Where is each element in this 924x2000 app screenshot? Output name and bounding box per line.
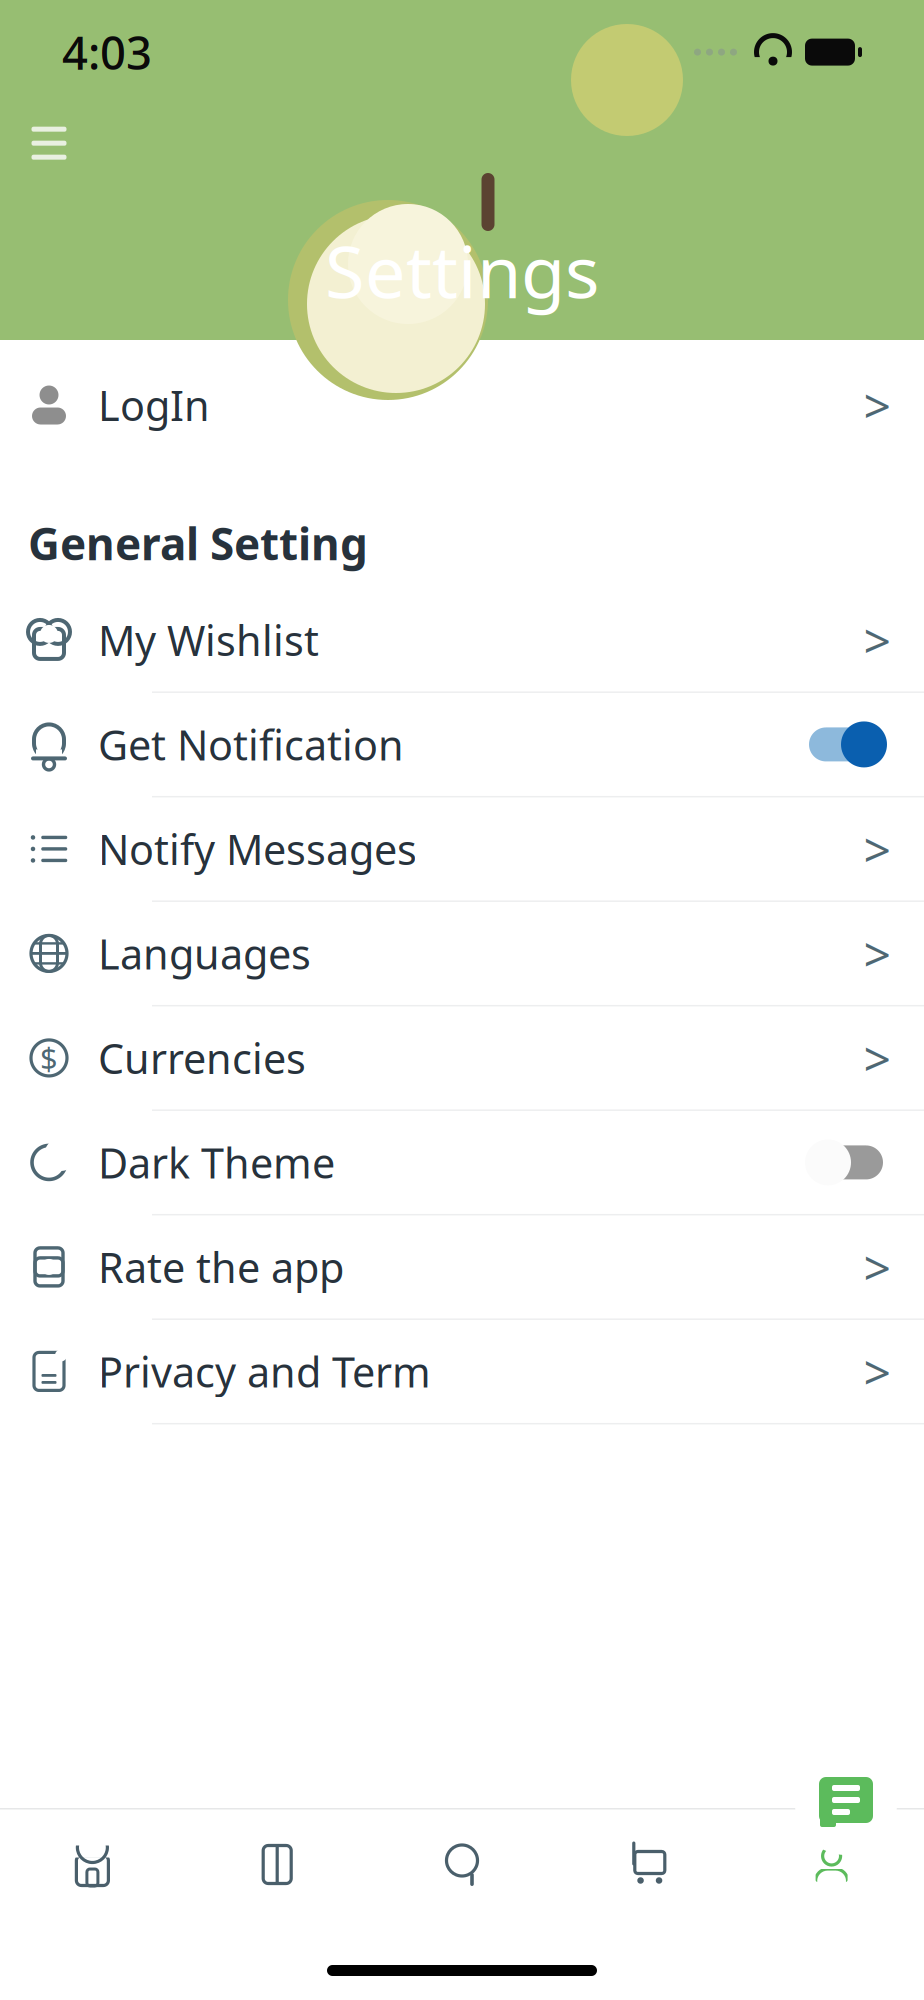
staticText: > — [863, 373, 890, 437]
staticText: LogIn — [98, 378, 210, 432]
staticText: > — [863, 1340, 890, 1403]
button[interactable]: Get Notification — [0, 693, 924, 797]
button[interactable]: Privacy and Term — [0, 1320, 924, 1424]
staticText: My Wishlist — [98, 612, 319, 667]
button[interactable]: Rate the app — [0, 1215, 924, 1320]
staticText: Currencies — [98, 1030, 306, 1085]
button[interactable]: Chat support — [790, 1748, 902, 1860]
staticText: 4:03 — [62, 22, 152, 82]
button[interactable]: Account — [739, 1841, 924, 1887]
staticText: $ — [40, 1038, 58, 1078]
staticText: Notify Messages — [98, 821, 417, 876]
button[interactable]: Search — [370, 1840, 554, 1888]
staticText: Get Notification — [98, 717, 404, 772]
button[interactable]: $ — [0, 1006, 924, 1111]
staticText: Dark Theme — [98, 1135, 335, 1190]
button[interactable]: Home — [0, 1840, 185, 1888]
staticText: > — [863, 817, 890, 881]
staticText: General Setting — [28, 514, 368, 572]
staticText: Settings — [325, 222, 599, 318]
staticText: > — [863, 922, 890, 985]
button[interactable]: Cart — [554, 1840, 739, 1888]
staticText: > — [863, 1235, 890, 1299]
button[interactable]: LogIn — [0, 340, 924, 470]
button[interactable]: Menu — [14, 108, 84, 178]
button[interactable]: Notify Messages — [0, 797, 924, 902]
staticText: Rate the app — [98, 1239, 344, 1294]
staticText: > — [863, 1026, 890, 1090]
staticText: Privacy and Term — [98, 1344, 431, 1399]
button[interactable]: Dark Theme — [0, 1111, 924, 1215]
button[interactable]: Categories — [185, 1840, 370, 1888]
button[interactable]: Languages — [0, 902, 924, 1006]
staticText: Languages — [98, 926, 311, 981]
staticText: > — [863, 608, 890, 672]
button[interactable]: My Wishlist — [0, 588, 924, 693]
